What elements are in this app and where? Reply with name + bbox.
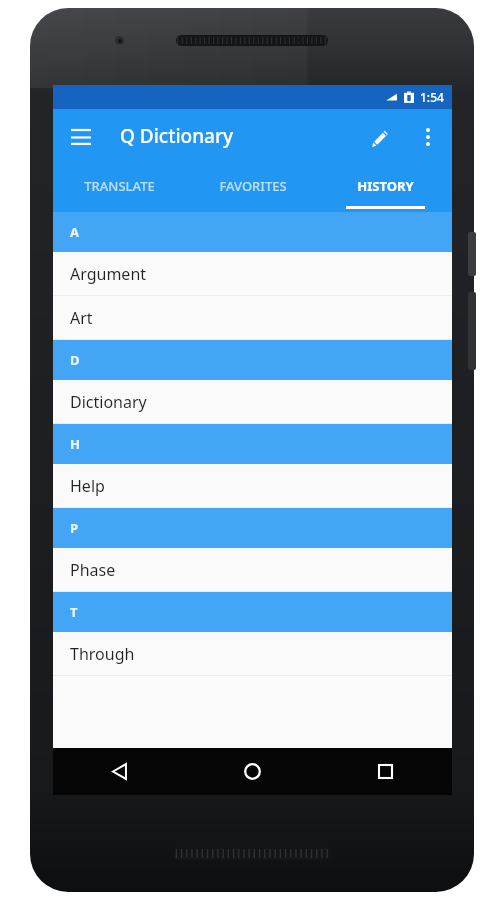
button[interactable]: Recent apps xyxy=(319,748,452,795)
button[interactable]: FAVORITES xyxy=(186,165,319,212)
button[interactable]: Argument xyxy=(53,252,452,295)
button[interactable]: TRANSLATE xyxy=(53,165,186,212)
button[interactable]: Dictionary xyxy=(53,380,452,423)
staticText: Through xyxy=(70,643,135,665)
button[interactable]: Through xyxy=(53,632,452,675)
staticText: Art xyxy=(70,307,93,329)
staticText: Argument xyxy=(70,263,147,285)
staticText: P xyxy=(70,519,79,537)
staticText: 1:54 xyxy=(420,89,444,105)
button[interactable]: Edit xyxy=(356,113,404,161)
staticText: Phase xyxy=(70,559,116,581)
button[interactable]: Phase xyxy=(53,548,452,591)
button[interactable]: Home xyxy=(186,748,319,795)
button[interactable]: Back xyxy=(53,748,186,795)
button[interactable]: More options xyxy=(404,113,452,161)
button[interactable]: Help xyxy=(53,464,452,507)
staticText: FAVORITES xyxy=(219,177,287,195)
staticText: A xyxy=(70,223,79,241)
staticText: T xyxy=(70,603,78,621)
staticText: Q Dictionary xyxy=(120,123,234,149)
staticText: HISTORY xyxy=(357,177,414,195)
staticText: Help xyxy=(70,475,105,497)
button[interactable]: Open navigation drawer xyxy=(57,113,105,161)
staticText: TRANSLATE xyxy=(84,177,155,195)
button[interactable]: HISTORY xyxy=(319,165,452,212)
staticText: Dictionary xyxy=(70,391,147,413)
staticText: H xyxy=(70,435,80,453)
staticText: D xyxy=(70,351,80,369)
button[interactable]: Art xyxy=(53,296,452,339)
